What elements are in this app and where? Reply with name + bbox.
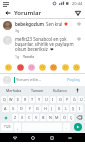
button[interactable]: bebekgozlum	[0, 21, 85, 33]
button[interactable]: Geri	[11, 134, 19, 142]
button[interactable]: Sesle yaz	[72, 86, 83, 95]
staticText: I	[52, 97, 54, 102]
staticText: Kullanıcı	[53, 88, 68, 93]
button[interactable]: S	[10, 105, 17, 112]
staticText: C	[28, 115, 31, 120]
button[interactable]: Gönder	[73, 8, 82, 17]
staticText: E	[17, 97, 20, 102]
button[interactable]: Z	[12, 114, 18, 121]
button[interactable]: Geri	[3, 8, 12, 17]
button[interactable]: K	[56, 105, 62, 112]
button[interactable]: T	[29, 96, 35, 103]
button[interactable]: B	[40, 114, 46, 121]
button[interactable]: Yanıtla	[23, 54, 35, 59]
button[interactable]: Son uygulamalar	[48, 134, 56, 142]
staticText: U	[45, 97, 48, 102]
button[interactable]: Ana ekran	[29, 134, 37, 142]
button[interactable]: Ç	[68, 114, 74, 121]
staticText: K	[58, 106, 61, 111]
button[interactable]: C	[26, 114, 32, 121]
button[interactable]: N	[47, 114, 53, 121]
button[interactable]: Emoji	[4, 63, 13, 72]
staticText: I	[79, 106, 81, 111]
staticText: Y	[38, 97, 41, 102]
staticText: Paylaş	[67, 77, 81, 83]
button[interactable]: Paylaş	[66, 76, 82, 84]
staticText: Yorum ekle...	[16, 77, 42, 83]
button[interactable]: W	[8, 96, 14, 103]
button[interactable]: Beğen	[76, 36, 82, 42]
staticText: 1g	[15, 54, 20, 59]
button[interactable]: J	[49, 105, 55, 112]
button[interactable]: P	[64, 96, 70, 103]
button[interactable]: Tamam	[26, 86, 49, 95]
staticText: T	[31, 97, 34, 102]
staticText: .	[66, 125, 68, 130]
button[interactable]: Beğen	[76, 21, 82, 27]
button[interactable]: F	[26, 105, 33, 112]
button[interactable]: H	[42, 105, 48, 112]
button[interactable]: Klavye	[66, 134, 74, 142]
button[interactable]: Emoji	[72, 63, 81, 72]
button[interactable]: V	[33, 114, 39, 121]
button[interactable]: Ğ	[71, 96, 77, 103]
button[interactable]: R	[22, 96, 28, 103]
staticText: Q	[3, 97, 6, 102]
button[interactable]: ,	[14, 123, 21, 131]
button[interactable]: U	[43, 96, 49, 103]
button[interactable]: Emoji	[49, 63, 58, 72]
button[interactable]: Emoji	[38, 63, 47, 72]
button[interactable]: Emoji	[61, 63, 70, 72]
button[interactable]: mefkt23 Sonabcol en çok başarılar, sihir…	[0, 36, 85, 59]
button[interactable]: L	[63, 105, 69, 112]
button[interactable]: Merhaba	[2, 86, 26, 95]
staticText: Ş	[72, 106, 75, 111]
button[interactable]: Emoji	[16, 63, 25, 72]
button[interactable]: ?123	[1, 123, 13, 131]
button[interactable]: E	[15, 96, 21, 103]
button[interactable]: Shift	[1, 114, 11, 121]
staticText: D	[20, 106, 23, 111]
staticText: mefkt23 Sonabcol en çok başarılar, sihir…	[15, 36, 75, 53]
staticText: G	[36, 106, 39, 111]
staticText: N	[49, 115, 52, 120]
button[interactable]: O	[57, 96, 63, 103]
staticText: X	[21, 115, 24, 120]
button[interactable]: D	[18, 105, 25, 112]
button[interactable]: I	[50, 96, 56, 103]
staticText: S	[12, 106, 15, 111]
button[interactable]: .	[63, 123, 70, 131]
staticText: 20:44	[72, 1, 83, 6]
staticText: L	[65, 106, 67, 111]
staticText: Ö	[63, 115, 66, 120]
button[interactable]: Ü	[78, 96, 84, 103]
staticText: Ğ	[73, 97, 76, 102]
staticText: Merhaba	[6, 88, 22, 93]
button[interactable]: Ö	[61, 114, 67, 121]
button[interactable]: G	[34, 105, 41, 112]
button[interactable]: Emoji	[27, 63, 36, 72]
staticText: R	[24, 97, 27, 102]
staticText: H	[44, 106, 47, 111]
button[interactable]: Ş	[70, 105, 76, 112]
staticText: J	[51, 106, 53, 111]
staticText: Sen kral	[46, 21, 63, 27]
button[interactable]: Kullanıcı	[49, 86, 72, 95]
button[interactable]: Sil	[75, 114, 84, 121]
staticText: Yanıtla	[23, 54, 35, 59]
staticText: 3g	[15, 28, 20, 33]
staticText: ?123	[4, 125, 11, 129]
button[interactable]: A	[2, 105, 9, 112]
staticText: Ü	[80, 97, 83, 102]
button[interactable]: Gönder	[71, 123, 84, 131]
staticText: Tamam	[31, 88, 44, 93]
button[interactable]: X	[19, 114, 25, 121]
staticText: O	[59, 97, 62, 102]
staticText: A	[4, 106, 7, 111]
button[interactable]: I	[77, 105, 83, 112]
button[interactable]: Q	[1, 96, 7, 103]
button[interactable]: M	[54, 114, 60, 121]
staticText: V	[35, 115, 38, 120]
button[interactable]: Y	[36, 96, 42, 103]
